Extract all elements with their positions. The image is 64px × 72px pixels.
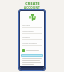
staticText: Email address — [22, 30, 34, 32]
staticText: Full name — [22, 24, 30, 26]
button[interactable]: Confirm password — [22, 42, 42, 46]
staticText: Password — [22, 36, 30, 38]
button[interactable] — [22, 49, 42, 52]
button[interactable]: Sign up — [21, 54, 43, 57]
button[interactable]: Navigation bar — [20, 66, 44, 68]
button[interactable]: App logo — [29, 14, 36, 21]
staticText: Confirm password — [22, 42, 37, 44]
staticText: CREATE — [25, 1, 40, 6]
button[interactable]: Full name — [22, 24, 42, 28]
staticText: ACCOUNT — [24, 6, 40, 10]
button[interactable]: Password — [22, 36, 42, 40]
button[interactable]: Email address — [22, 30, 42, 34]
